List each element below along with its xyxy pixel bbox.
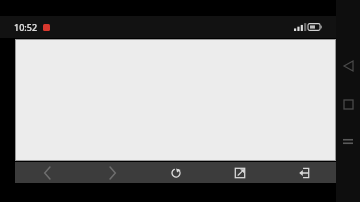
button[interactable]: Exit bbox=[272, 162, 336, 183]
button[interactable]: Reload bbox=[144, 162, 208, 183]
button[interactable]: Navigate back bbox=[15, 162, 80, 183]
button[interactable]: Home bbox=[336, 94, 360, 114]
staticText: 10:52 bbox=[14, 21, 38, 33]
button[interactable]: Recent apps bbox=[336, 131, 360, 151]
button[interactable]: Back bbox=[336, 56, 360, 76]
button[interactable]: Navigate forward bbox=[80, 162, 144, 183]
button[interactable]: Share bbox=[208, 162, 272, 183]
